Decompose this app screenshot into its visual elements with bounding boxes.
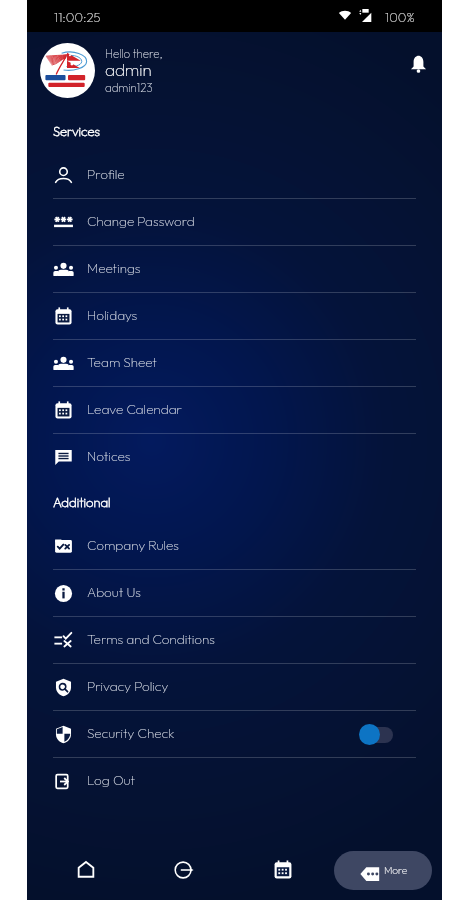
staticText: More bbox=[384, 864, 408, 877]
button[interactable]: Calendar bbox=[261, 848, 305, 892]
staticText: 100% bbox=[385, 9, 415, 25]
button[interactable]: Leave Calendar bbox=[27, 387, 442, 434]
staticText: Company Rules bbox=[87, 536, 180, 553]
button[interactable]: Attendance bbox=[162, 848, 206, 892]
button[interactable]: Company Rules bbox=[27, 523, 442, 570]
staticText: About Us bbox=[87, 583, 141, 600]
staticText: Team Sheet bbox=[87, 353, 157, 370]
staticText: Security Check bbox=[87, 724, 175, 741]
staticText: Notices bbox=[87, 447, 131, 464]
staticText: Terms and Conditions bbox=[87, 630, 215, 647]
staticText: Holidays bbox=[87, 306, 138, 323]
button[interactable]: Team Sheet bbox=[27, 340, 442, 387]
button[interactable]: Notifications bbox=[401, 47, 435, 81]
staticText: 11:00:25 bbox=[54, 9, 101, 25]
button[interactable]: Privacy Policy bbox=[27, 664, 442, 711]
staticText: Privacy Policy bbox=[87, 677, 169, 694]
button[interactable]: Notices bbox=[27, 434, 442, 481]
staticText: Hello there, bbox=[105, 46, 163, 60]
button[interactable]: Profile bbox=[27, 152, 442, 199]
staticText: Additional bbox=[53, 494, 111, 510]
staticText: Change Password bbox=[87, 212, 195, 229]
button[interactable]: Security Check bbox=[27, 711, 442, 758]
staticText: admin bbox=[105, 59, 152, 80]
staticText: Leave Calendar bbox=[87, 400, 183, 417]
staticText: Profile bbox=[87, 165, 125, 182]
staticText: Services bbox=[53, 123, 100, 139]
button[interactable]: More bbox=[334, 851, 432, 890]
button[interactable]: Meetings bbox=[27, 246, 442, 293]
button[interactable]: Terms and Conditions bbox=[27, 617, 442, 664]
staticText: admin123 bbox=[105, 80, 153, 94]
button[interactable]: Holidays bbox=[27, 293, 442, 340]
staticText: Meetings bbox=[87, 259, 141, 276]
button[interactable]: Change Password bbox=[27, 199, 442, 246]
button[interactable]: Log Out bbox=[27, 758, 442, 805]
staticText: Log Out bbox=[87, 771, 136, 788]
button[interactable]: Home bbox=[64, 848, 108, 892]
button[interactable]: About Us bbox=[27, 570, 442, 617]
